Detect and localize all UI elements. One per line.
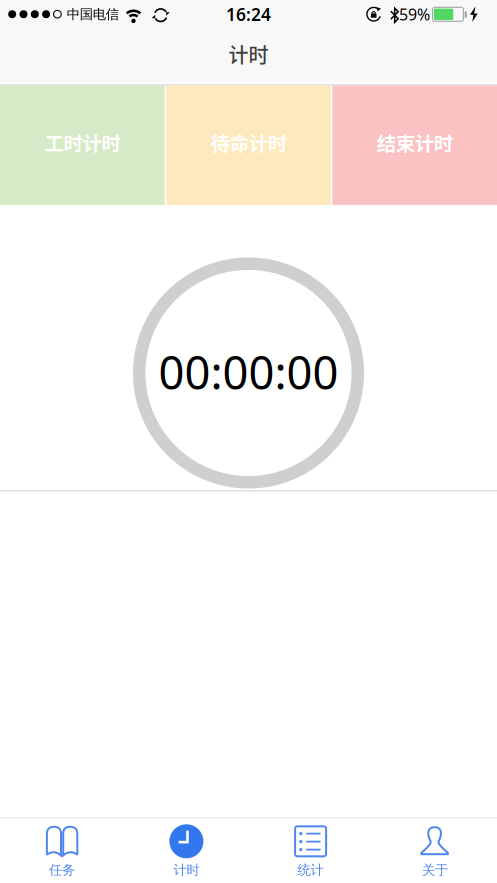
button[interactable]: 任务 — [39, 825, 85, 878]
button[interactable]: 结束计时 — [332, 85, 497, 205]
staticText: 关于 — [422, 862, 448, 878]
staticText: 任务 — [49, 862, 75, 878]
button[interactable]: 关于 — [412, 825, 458, 878]
staticText: 结束计时 — [377, 128, 453, 157]
button[interactable]: 待命计时 — [166, 85, 331, 205]
staticText: 工时计时 — [44, 128, 120, 157]
button[interactable]: 统计 — [288, 825, 334, 878]
staticText: 待命计时 — [211, 128, 287, 157]
staticText: 计时 — [228, 39, 268, 68]
staticText: 计时 — [173, 862, 199, 878]
staticText: 统计 — [298, 862, 324, 878]
staticText: 中国电信 — [67, 6, 119, 23]
staticText: 00:00:00 — [158, 342, 338, 402]
button[interactable]: 计时 — [163, 825, 209, 878]
button[interactable]: 工时计时 — [0, 85, 165, 205]
staticText: 59% — [399, 4, 430, 25]
staticText: 16:24 — [226, 3, 271, 26]
